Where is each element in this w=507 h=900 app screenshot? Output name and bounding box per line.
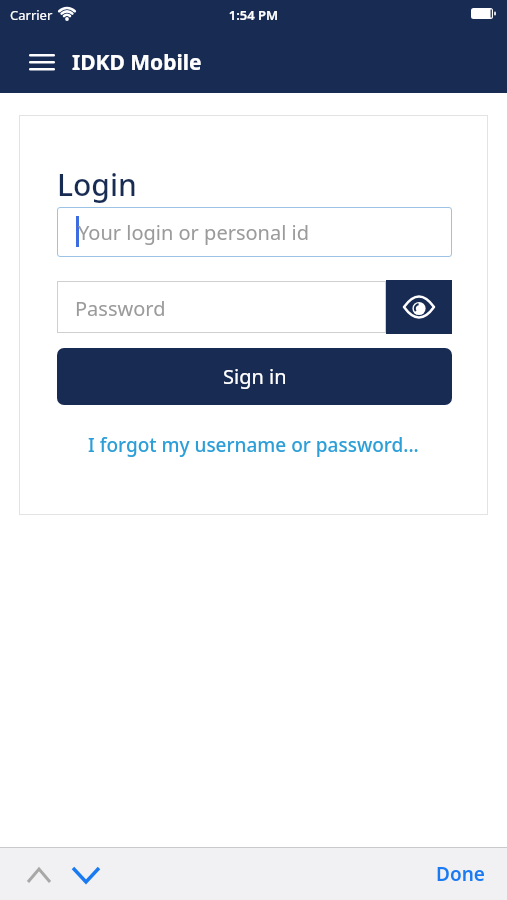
button[interactable]: Sign in [57,348,452,405]
staticText: Your login or personal id [78,219,309,246]
staticText: Carrier [10,6,53,24]
button[interactable]: Done [425,853,495,895]
staticText: IDKD Mobile [72,48,202,77]
button[interactable] [386,280,452,334]
staticText: 1:54 PM [0,6,507,24]
staticText: Login [57,164,137,205]
button[interactable]: Password [57,280,452,334]
button[interactable] [22,44,62,80]
button[interactable]: I forgot my username or password... [19,430,488,460]
staticText: I forgot my username or password... [88,432,419,458]
button[interactable]: Your login or personal id [57,207,452,257]
staticText: Done [436,861,485,887]
button[interactable] [65,857,107,893]
staticText: Sign in [223,363,287,390]
staticText: Password [75,295,166,322]
button[interactable] [18,857,60,893]
